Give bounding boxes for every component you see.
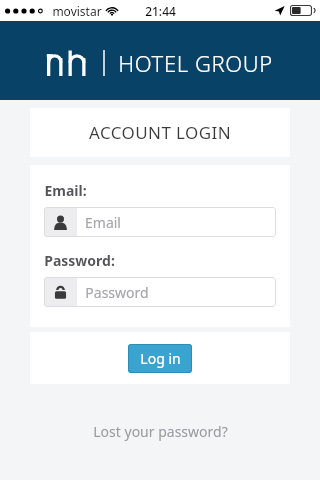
button[interactable]: Email [44,207,276,237]
staticText: 21:44 [145,3,176,19]
staticText: Log in [140,349,181,368]
button[interactable]: Password [44,277,276,307]
staticText: Email [85,213,121,232]
button[interactable]: Lost your password? [0,422,320,441]
other: Password [53,285,68,300]
other: Email [53,215,68,230]
staticText: HOTEL GROUP [118,48,273,78]
staticText: Password [85,283,149,302]
staticText: Email: [44,181,87,200]
staticText: Lost your password? [93,422,228,441]
staticText: Password: [44,251,115,270]
staticText: movistar [52,3,102,19]
button[interactable]: Log in [128,344,192,373]
staticText: ACCOUNT LOGIN [89,121,231,144]
